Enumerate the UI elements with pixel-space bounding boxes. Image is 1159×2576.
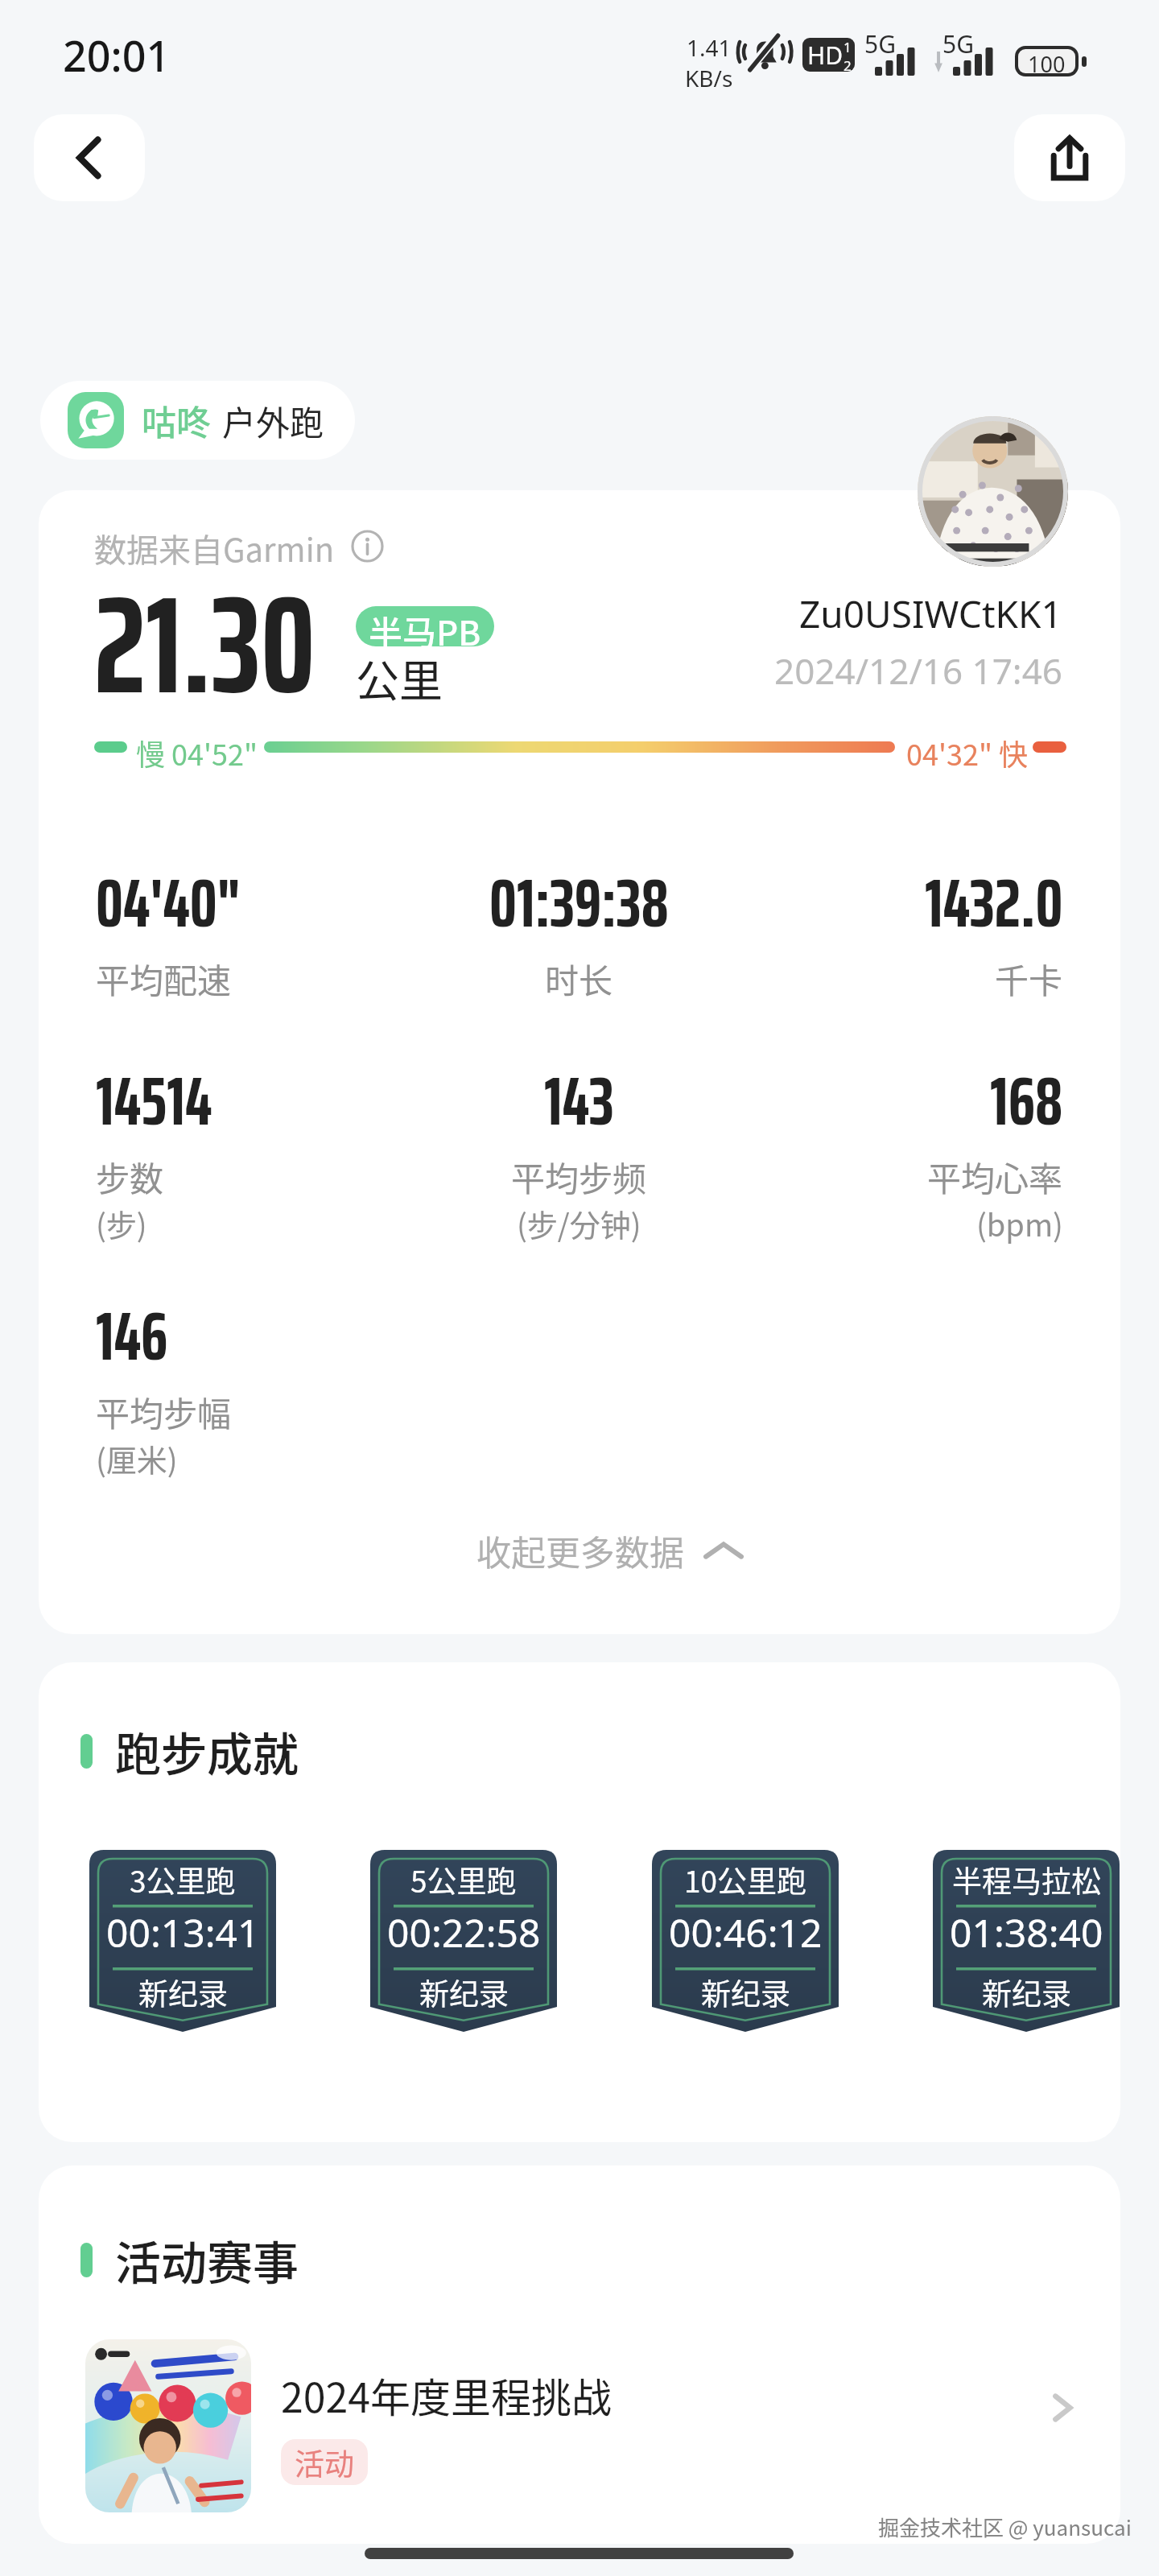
staticText: 咕咚: [142, 395, 211, 445]
staticText: 143: [544, 1047, 614, 1155]
staticText: 活动赛事: [115, 2227, 299, 2293]
button[interactable]: Share: [1014, 114, 1125, 201]
staticText: 04'32" 快: [906, 732, 1029, 774]
staticText: 2: [843, 56, 852, 72]
staticText: KB/s: [685, 63, 733, 93]
staticText: 公里: [356, 646, 443, 709]
staticText: 146: [96, 1282, 168, 1390]
staticText: 1432.0: [925, 849, 1063, 957]
staticText: 5G: [864, 27, 896, 60]
staticText: 收起更多数据: [476, 1525, 684, 1575]
staticText: (厘米): [96, 1436, 178, 1480]
staticText: 1: [843, 38, 852, 56]
staticText: 新纪录: [982, 1971, 1071, 2014]
staticText: 2024年度里程挑战: [281, 2366, 612, 2424]
staticText: 数据来自Garmin: [94, 525, 335, 567]
staticText: 平均配速: [96, 954, 232, 1003]
staticText: 平均步幅: [96, 1387, 232, 1436]
staticText: 20:01: [63, 27, 171, 84]
staticText: 半程马拉松: [952, 1858, 1101, 1901]
staticText: 00:22:58: [387, 1906, 541, 1959]
staticText: 平均步频: [511, 1152, 647, 1201]
staticText: 2024/12/16 17:46: [774, 646, 1062, 695]
button[interactable]: 3公里跑: [89, 1850, 276, 2032]
button[interactable]: Back: [34, 114, 145, 201]
button[interactable]: 5公里跑: [370, 1850, 557, 2032]
staticText: 00:46:12: [669, 1906, 823, 1959]
staticText: 21.30: [94, 538, 316, 752]
staticText: (步): [96, 1201, 147, 1245]
staticText: 新纪录: [701, 1971, 790, 2014]
staticText: (步/分钟): [517, 1201, 641, 1245]
staticText: 慢 04'52": [136, 732, 258, 774]
staticText: 04'40": [96, 849, 241, 957]
staticText: 01:38:40: [950, 1906, 1103, 1959]
staticText: 100: [1028, 49, 1066, 73]
button[interactable]: 咕咚: [40, 381, 355, 460]
staticText: 时长: [545, 954, 613, 1003]
button[interactable]: 10公里跑: [652, 1850, 839, 2032]
staticText: HD: [807, 39, 843, 72]
staticText: 5G: [942, 27, 974, 60]
staticText: 5公里跑: [410, 1858, 517, 1901]
staticText: 1.41: [687, 32, 732, 63]
staticText: 千卡: [995, 954, 1063, 1003]
staticText: 新纪录: [419, 1971, 509, 2014]
staticText: Zu0USIWCtKK1: [799, 588, 1062, 639]
staticText: 3公里跑: [130, 1858, 236, 1901]
other: Open event: [1048, 2392, 1077, 2424]
button[interactable]: 半程马拉松: [933, 1850, 1120, 2032]
staticText: 跑步成就: [115, 1718, 299, 1785]
staticText: 10公里跑: [684, 1858, 807, 1901]
staticText: 01:39:38: [489, 849, 669, 957]
staticText: 户外跑: [222, 396, 324, 445]
staticText: 掘金技术社区 @ yuansucai: [878, 2512, 1132, 2542]
staticText: 14514: [96, 1047, 212, 1155]
staticText: 00:13:41: [106, 1906, 260, 1959]
staticText: 平均心率: [927, 1152, 1063, 1201]
staticText: 新纪录: [138, 1971, 228, 2014]
staticText: 半马PB: [369, 606, 481, 646]
button[interactable]: User avatar: [918, 416, 1068, 567]
staticText: 168: [990, 1047, 1063, 1155]
staticText: (bpm): [976, 1201, 1063, 1245]
staticText: 活动: [295, 2441, 354, 2484]
button[interactable]: 收起更多数据: [39, 1516, 1120, 1585]
button[interactable]: 2024年度里程挑战: [39, 2329, 1120, 2522]
staticText: 步数: [96, 1152, 164, 1201]
